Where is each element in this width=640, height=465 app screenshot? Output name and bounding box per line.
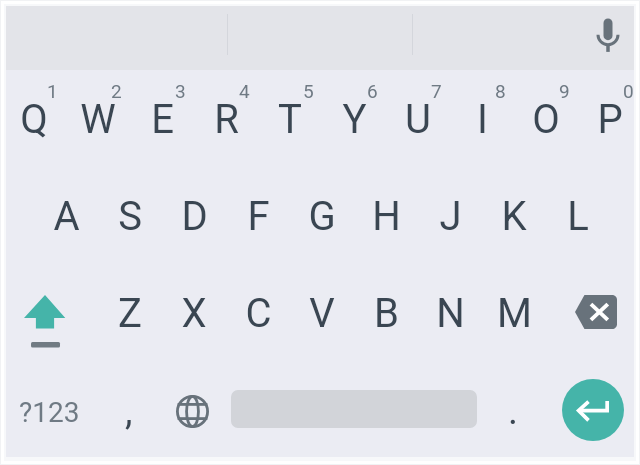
- staticText: U: [405, 96, 431, 143]
- staticText: Q: [20, 96, 48, 143]
- button[interactable]: Enter: [562, 379, 624, 441]
- staticText: L: [567, 193, 589, 240]
- button[interactable]: W: [66, 73, 130, 165]
- button[interactable]: E: [130, 73, 194, 165]
- button[interactable]: C: [226, 267, 290, 359]
- button[interactable]: ,: [101, 365, 157, 457]
- button[interactable]: I: [450, 73, 514, 165]
- staticText: O: [532, 96, 560, 143]
- button[interactable]: N: [418, 267, 482, 359]
- staticText: 6: [367, 80, 378, 102]
- staticText: B: [374, 290, 399, 337]
- button[interactable]: Change language: [162, 365, 222, 457]
- button[interactable]: H: [354, 170, 418, 262]
- staticText: .: [508, 389, 519, 434]
- button[interactable]: M: [482, 267, 546, 359]
- button[interactable]: U: [386, 73, 450, 165]
- staticText: N: [436, 290, 465, 337]
- button[interactable]: D: [162, 170, 226, 262]
- staticText: W: [80, 96, 116, 143]
- staticText: 2: [111, 80, 122, 102]
- staticText: 5: [303, 80, 314, 102]
- button[interactable]: Backspace: [550, 266, 640, 358]
- staticText: Y: [342, 96, 367, 143]
- staticText: I: [477, 96, 488, 143]
- button[interactable]: R: [194, 73, 258, 165]
- staticText: E: [151, 96, 174, 143]
- staticText: T: [278, 96, 302, 143]
- button[interactable]: V: [290, 267, 354, 359]
- button[interactable]: T: [258, 73, 322, 165]
- button[interactable]: J: [418, 170, 482, 262]
- button[interactable]: O: [514, 73, 578, 165]
- staticText: 8: [495, 80, 506, 102]
- staticText: K: [501, 193, 527, 240]
- staticText: S: [118, 193, 142, 240]
- staticText: Z: [118, 290, 142, 337]
- button[interactable]: L: [546, 170, 610, 262]
- staticText: D: [181, 193, 208, 240]
- staticText: 9: [559, 80, 570, 102]
- button[interactable]: Z: [98, 267, 162, 359]
- button[interactable]: Y: [322, 73, 386, 165]
- staticText: P: [597, 96, 623, 143]
- button[interactable]: .: [485, 365, 541, 457]
- staticText: H: [372, 193, 401, 240]
- staticText: C: [245, 290, 272, 337]
- staticText: R: [214, 96, 239, 143]
- staticText: M: [497, 290, 532, 337]
- staticText: 0: [623, 80, 634, 102]
- staticText: X: [181, 290, 207, 337]
- button[interactable]: Q: [2, 73, 66, 165]
- button[interactable]: S: [98, 170, 162, 262]
- staticText: F: [247, 193, 270, 240]
- staticText: 1: [47, 80, 58, 102]
- button[interactable]: G: [290, 170, 354, 262]
- button[interactable]: P: [578, 73, 640, 165]
- staticText: ?123: [19, 396, 80, 429]
- staticText: J: [439, 193, 462, 240]
- staticText: 3: [175, 80, 186, 102]
- button[interactable]: F: [226, 170, 290, 262]
- staticText: G: [308, 193, 336, 240]
- staticText: A: [53, 193, 80, 240]
- button[interactable]: B: [354, 267, 418, 359]
- button[interactable]: K: [482, 170, 546, 262]
- button[interactable]: A: [34, 170, 98, 262]
- staticText: ,: [125, 389, 133, 434]
- staticText: 4: [239, 80, 250, 102]
- button[interactable]: X: [162, 267, 226, 359]
- staticText: V: [309, 290, 335, 337]
- button[interactable]: Shift: [0, 274, 91, 366]
- staticText: 7: [431, 80, 442, 102]
- button[interactable]: ?123: [4, 366, 94, 458]
- button[interactable]: Voice input: [584, 13, 632, 61]
